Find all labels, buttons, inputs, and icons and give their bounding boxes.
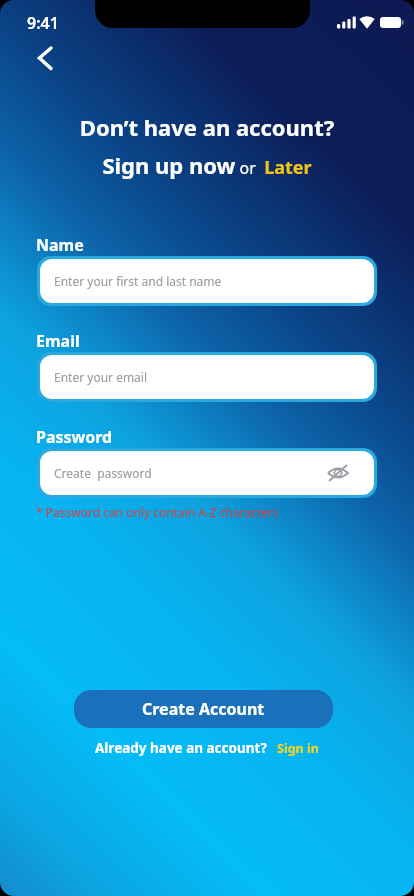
button[interactable] (28, 38, 64, 76)
button[interactable]: Create password (40, 451, 374, 495)
button[interactable]: Sign up now or Later (0, 150, 414, 180)
staticText: Already have an account? (95, 739, 267, 757)
staticText: Email (36, 330, 80, 352)
button[interactable]: Enter your first and last name (40, 259, 374, 303)
button[interactable]: Create Account (74, 690, 333, 728)
staticText: * Password can only contain A-Z characte… (36, 504, 279, 520)
button[interactable] (326, 461, 350, 485)
staticText: Password (36, 426, 113, 448)
staticText: Name (36, 234, 84, 256)
staticText: Create Account (142, 698, 265, 720)
button[interactable]: Enter your email (40, 355, 374, 399)
staticText: Enter your email (54, 369, 148, 385)
staticText: Enter your first and last name (54, 273, 222, 289)
staticText: Create password (54, 465, 152, 481)
staticText: 9:41 (27, 12, 59, 34)
button[interactable]: Sign in (277, 740, 319, 757)
staticText: Don’t have an account? (0, 112, 414, 142)
